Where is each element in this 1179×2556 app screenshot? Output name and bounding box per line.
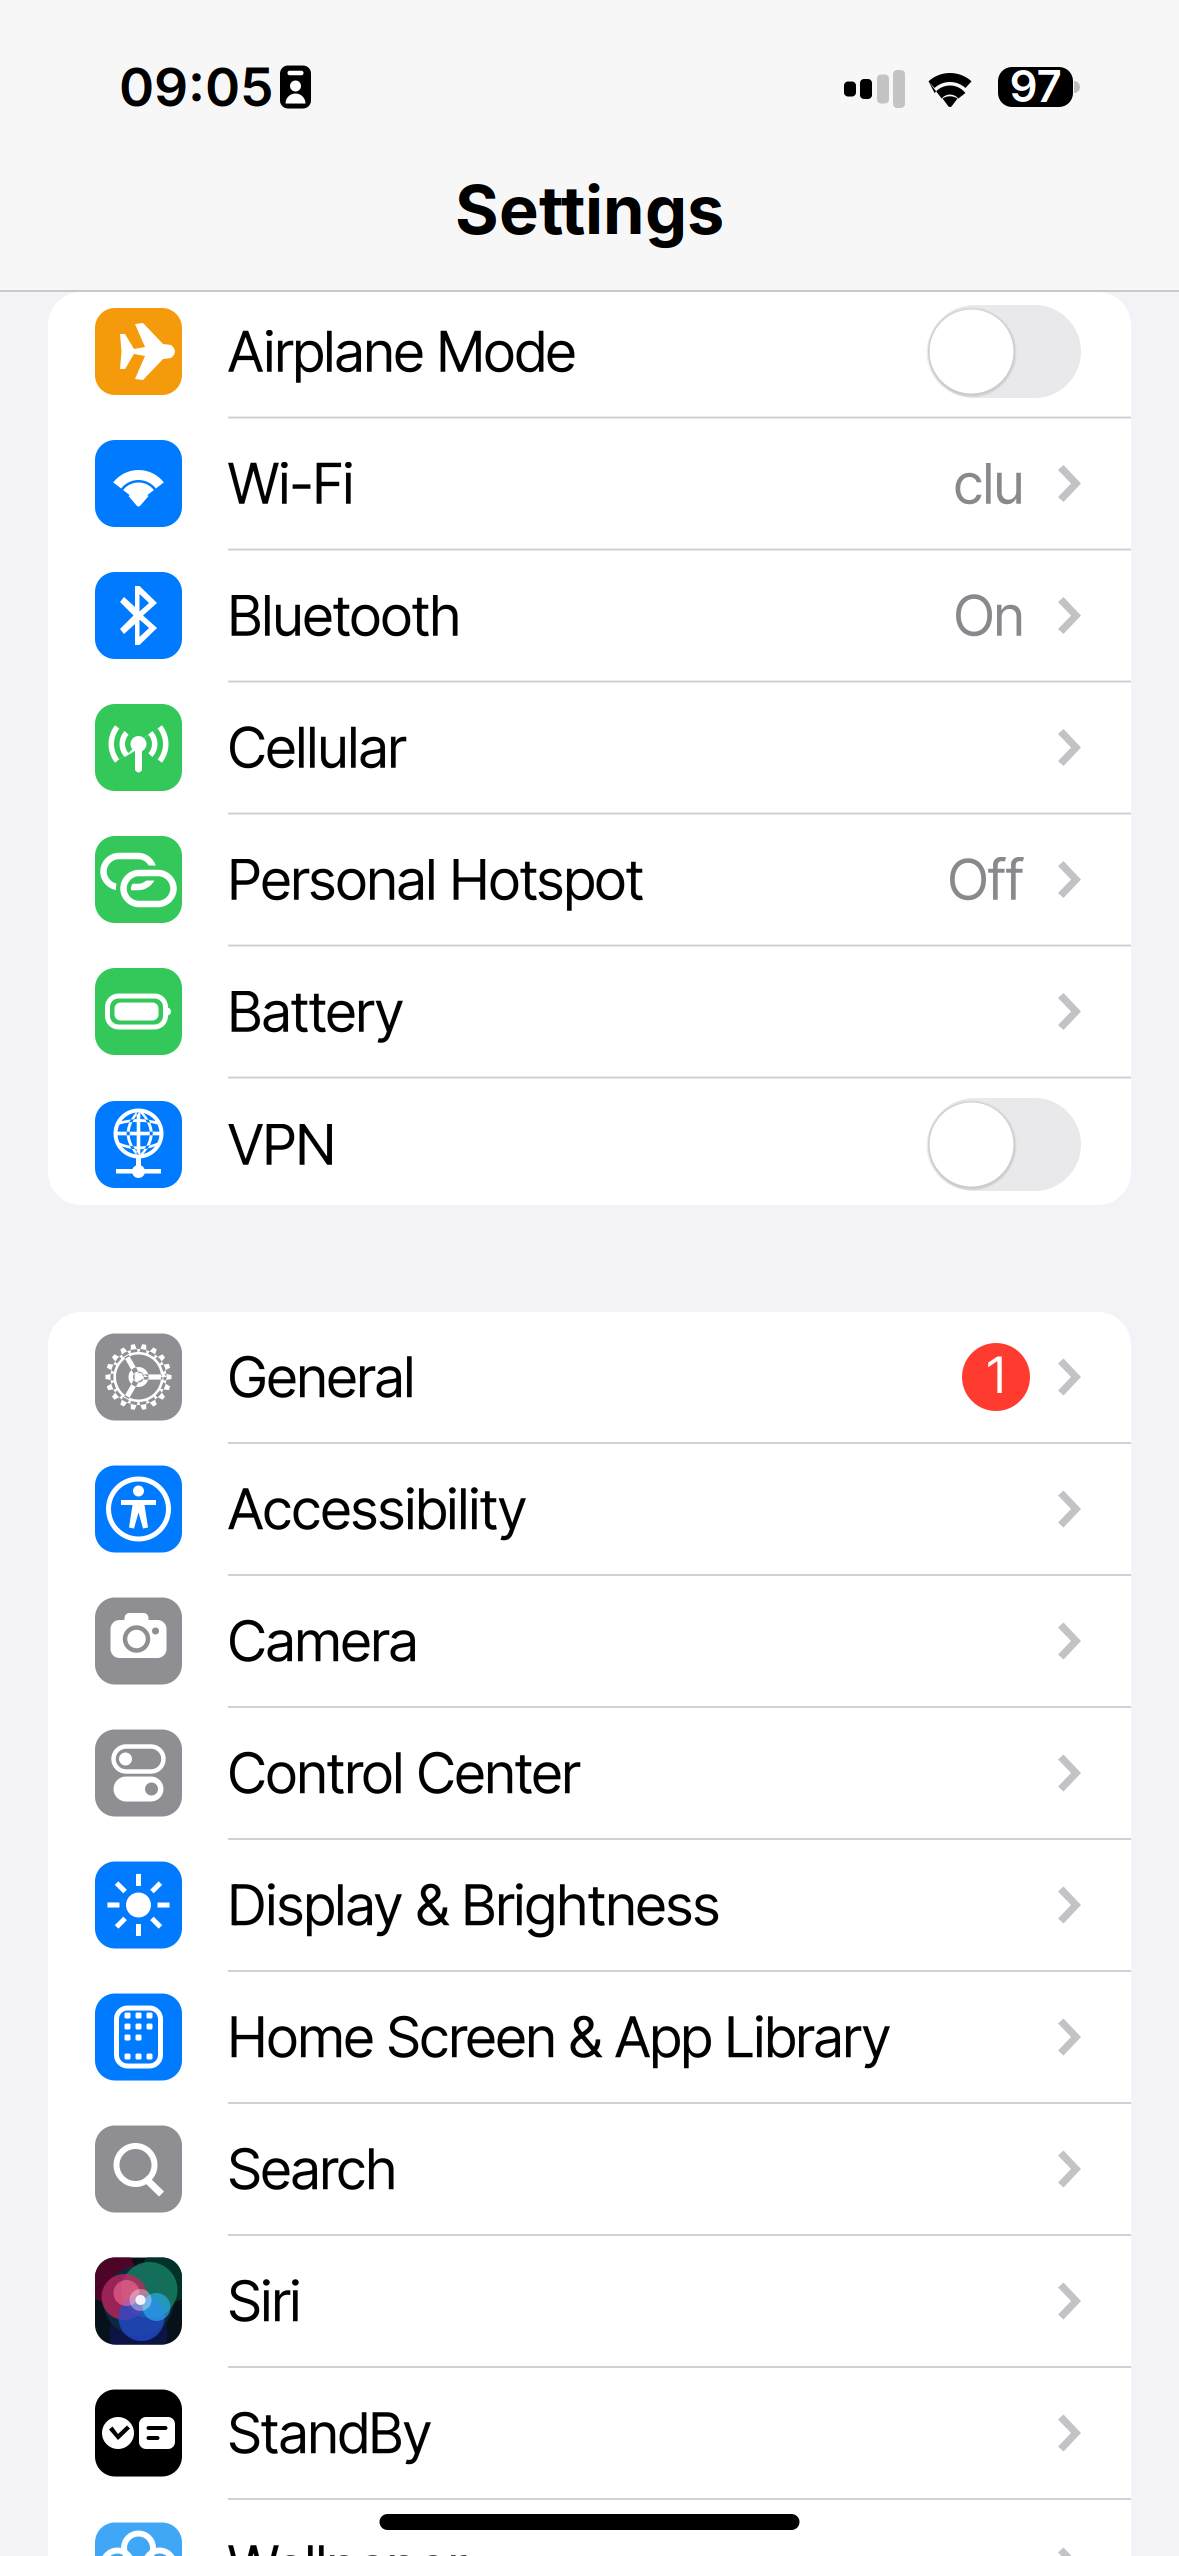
staticText: Control Center — [228, 1739, 580, 1807]
button[interactable]: General — [48, 1312, 1131, 1444]
staticText: Personal Hotspot — [228, 846, 644, 913]
staticText: Cellular — [228, 714, 406, 781]
staticText: Camera — [228, 1607, 418, 1675]
button[interactable]: Camera — [48, 1576, 1131, 1708]
staticText: 09:05 — [119, 55, 274, 119]
staticText: clu — [954, 450, 1024, 517]
button[interactable]: Wi-Fi — [48, 418, 1131, 550]
staticText: Battery — [228, 978, 404, 1045]
button[interactable]: Search — [48, 2104, 1131, 2236]
button[interactable]: Accessibility — [48, 1444, 1131, 1576]
button[interactable]: Personal Hotspot — [48, 814, 1131, 946]
staticText: Display & Brightness — [228, 1871, 720, 1939]
staticText: Search — [228, 2135, 397, 2203]
staticText: VPN — [228, 1111, 336, 1178]
button[interactable]: Wallpaper — [48, 2500, 1131, 2556]
button[interactable]: VPN — [48, 1078, 1131, 1210]
button[interactable]: Battery — [48, 946, 1131, 1078]
staticText: 1 — [987, 1344, 1005, 1406]
staticText: Settings — [455, 169, 724, 250]
staticText: On — [954, 582, 1024, 649]
staticText: Wallpaper — [228, 2532, 466, 2556]
staticText: Wi-Fi — [228, 450, 354, 517]
button[interactable]: Home Screen & App Library — [48, 1972, 1131, 2104]
staticText: Bluetooth — [228, 582, 461, 649]
button[interactable]: StandBy — [48, 2368, 1131, 2500]
button[interactable]: Airplane Mode — [48, 286, 1131, 418]
staticText: Home Screen & App Library — [228, 2003, 891, 2071]
staticText: Accessibility — [228, 1475, 527, 1543]
staticText: Airplane Mode — [228, 318, 576, 385]
button[interactable]: Control Center — [48, 1708, 1131, 1840]
button[interactable]: Bluetooth — [48, 550, 1131, 682]
button[interactable]: Siri — [48, 2236, 1131, 2368]
staticText: Off — [948, 846, 1024, 913]
button[interactable]: Display & Brightness — [48, 1840, 1131, 1972]
staticText: Siri — [228, 2267, 301, 2335]
staticText: StandBy — [228, 2399, 432, 2467]
staticText: 97 — [1009, 59, 1061, 113]
staticText: General — [228, 1343, 415, 1411]
button[interactable]: Cellular — [48, 682, 1131, 814]
